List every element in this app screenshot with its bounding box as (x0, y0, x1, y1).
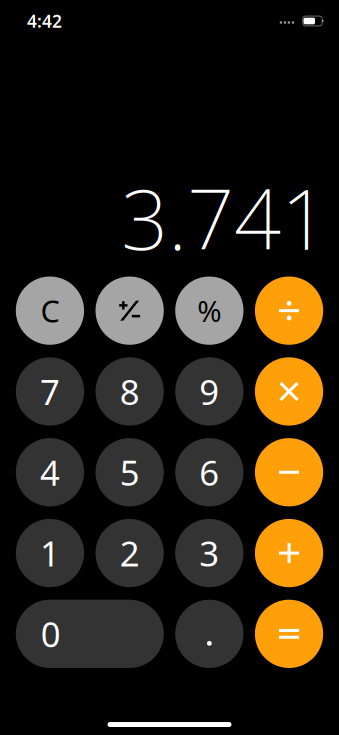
button[interactable]: 4 (16, 438, 84, 506)
button[interactable]: 0 (16, 600, 164, 668)
staticText: 9 (199, 368, 219, 414)
staticText: 1 (40, 530, 60, 576)
button[interactable]: Equals (255, 600, 323, 668)
staticText: 6 (199, 449, 219, 495)
staticText: 0 (41, 611, 61, 657)
button[interactable]: C (16, 276, 84, 345)
staticText: % (197, 291, 221, 330)
button[interactable]: Plus minus (95, 276, 164, 345)
staticText: 3 (199, 530, 219, 576)
staticText: 5 (120, 449, 140, 495)
staticText: 2 (120, 530, 140, 576)
staticText: C (40, 290, 59, 331)
button[interactable]: 1 (16, 519, 84, 587)
staticText: 8 (120, 368, 140, 414)
button[interactable]: 3 (175, 519, 243, 587)
button[interactable]: 2 (95, 519, 164, 587)
button[interactable]: 7 (16, 357, 84, 426)
button[interactable]: 5 (95, 438, 164, 506)
button[interactable]: 6 (175, 438, 243, 506)
staticText: 4:42 (27, 9, 62, 32)
staticText: 4 (40, 449, 60, 495)
button[interactable]: Divide (255, 276, 323, 345)
button[interactable]: % (175, 276, 243, 345)
button[interactable]: 9 (175, 357, 243, 426)
staticText: 3.741 (121, 163, 328, 272)
staticText: 7 (40, 368, 60, 414)
button[interactable]: Decimal point (175, 600, 243, 668)
button[interactable]: Subtract (255, 438, 323, 506)
button[interactable]: Multiply (255, 357, 323, 426)
button[interactable]: Add (255, 519, 323, 587)
button[interactable]: 8 (95, 357, 164, 426)
